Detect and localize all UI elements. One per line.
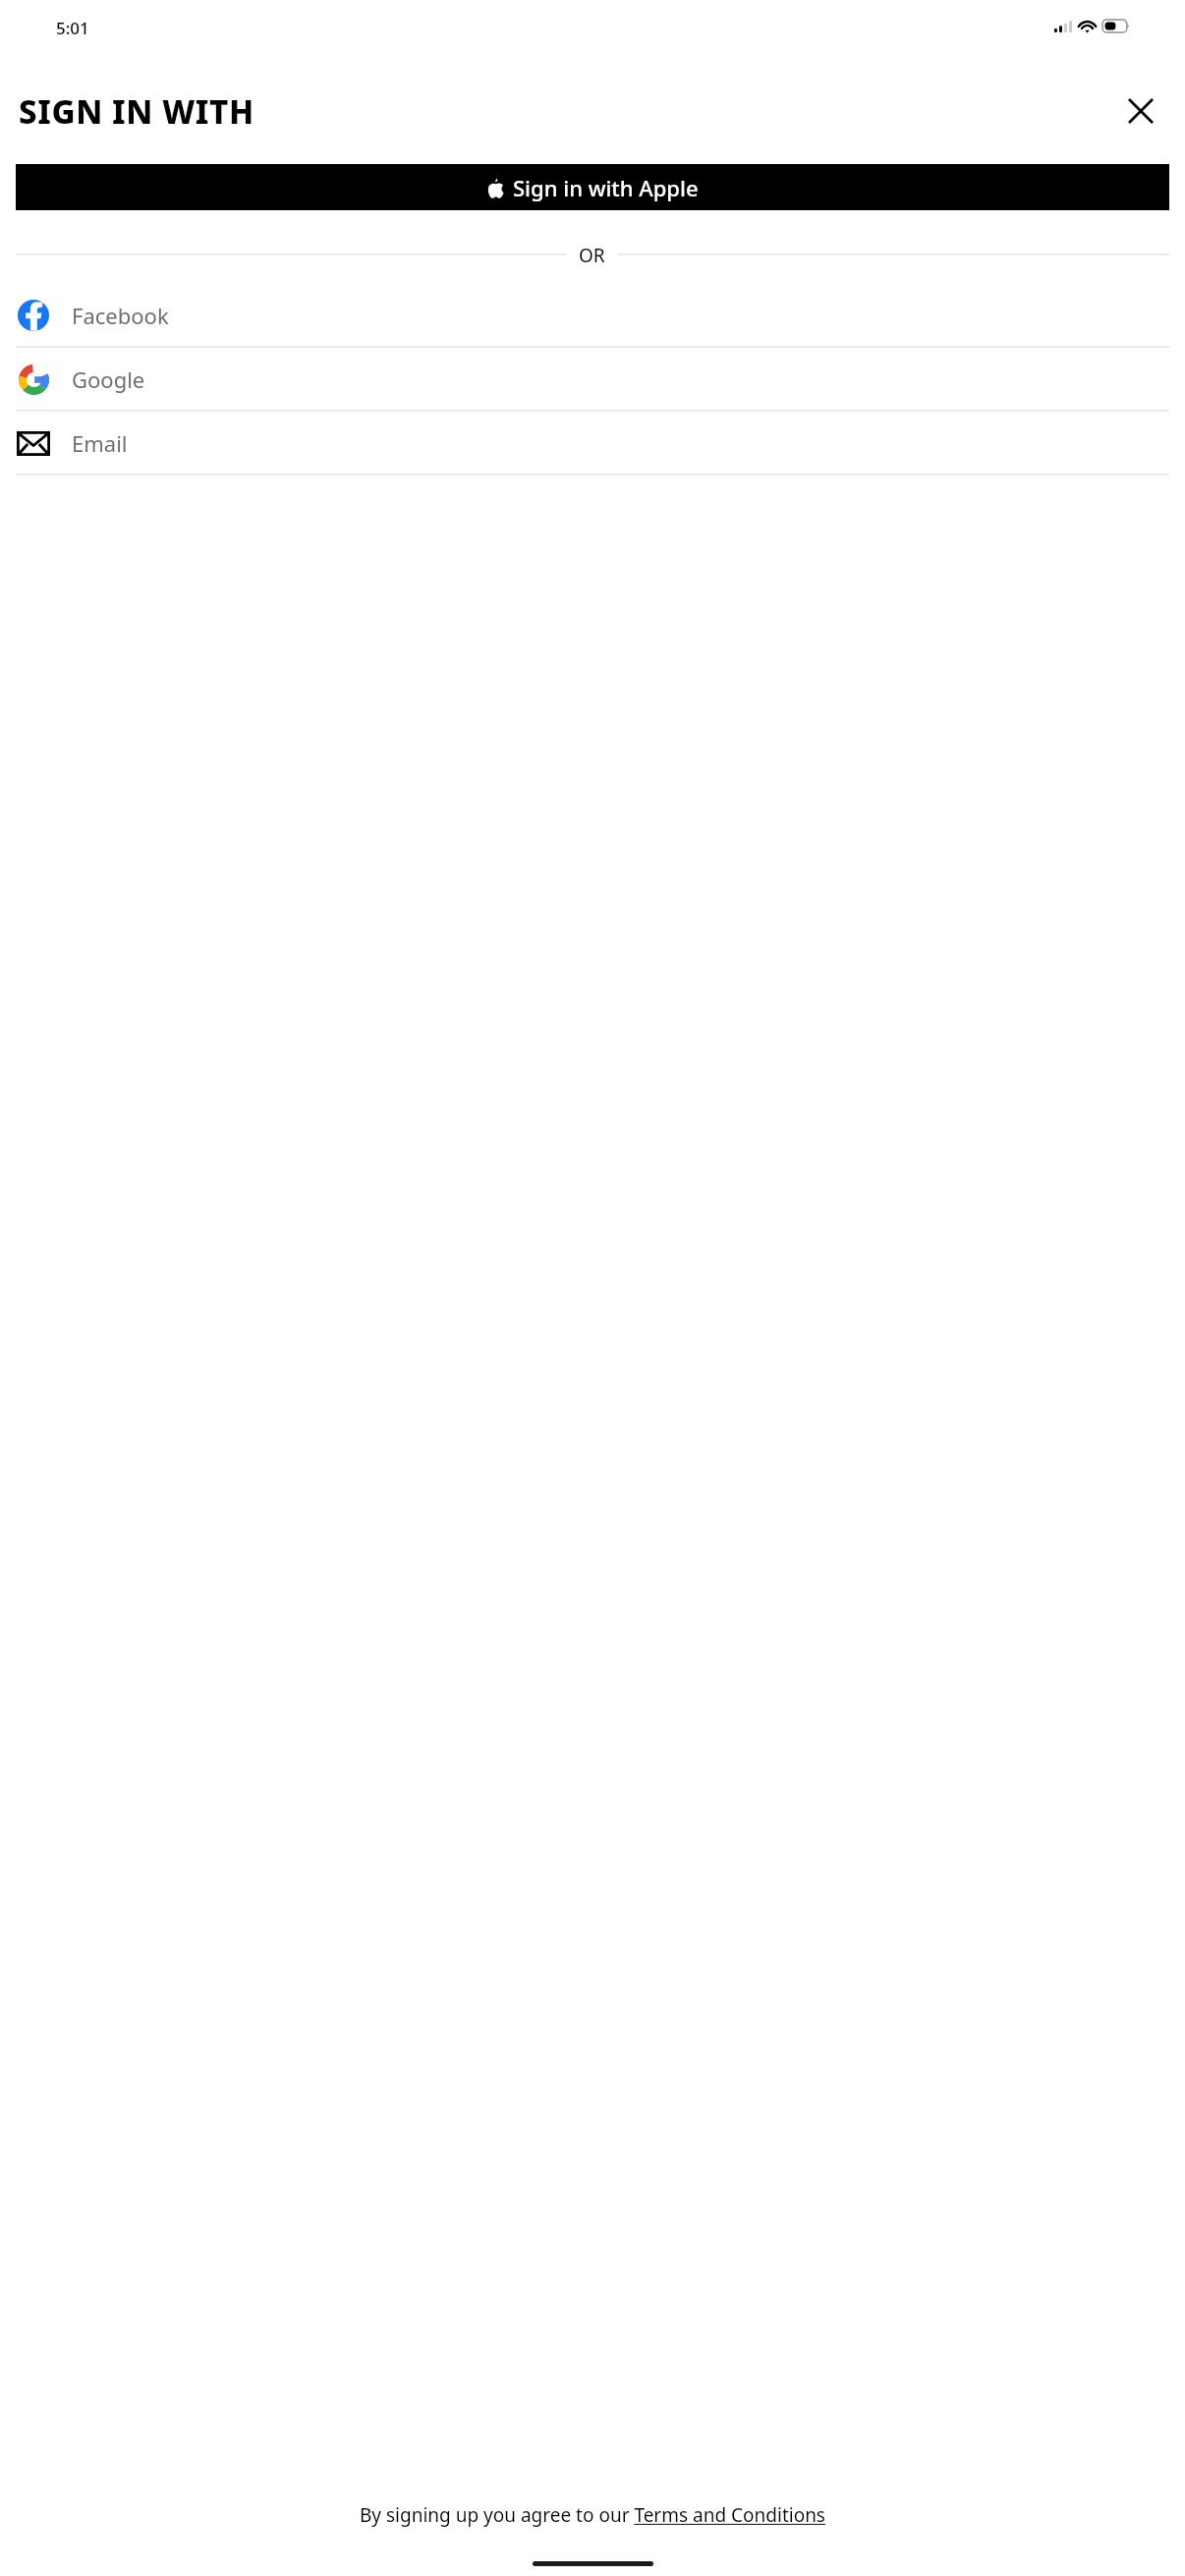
button[interactable]: Close [1118,88,1163,134]
button[interactable]: Email [0,412,1185,474]
staticText: Sign in with Apple [513,173,699,202]
staticText: By signing up you agree to our Terms and… [360,2502,825,2528]
staticText: OR [579,243,605,266]
staticText: Facebook [72,301,169,330]
button[interactable]: By signing up you agree to our Terms and… [0,2502,1185,2528]
button[interactable]: Sign in with Apple [16,164,1169,210]
staticText: Google [72,364,145,394]
button[interactable]: Facebook [0,284,1185,346]
staticText: Email [72,428,128,458]
staticText: 5:01 [56,17,89,39]
button[interactable]: Google [0,348,1185,410]
staticText: SIGN IN WITH [19,89,254,134]
